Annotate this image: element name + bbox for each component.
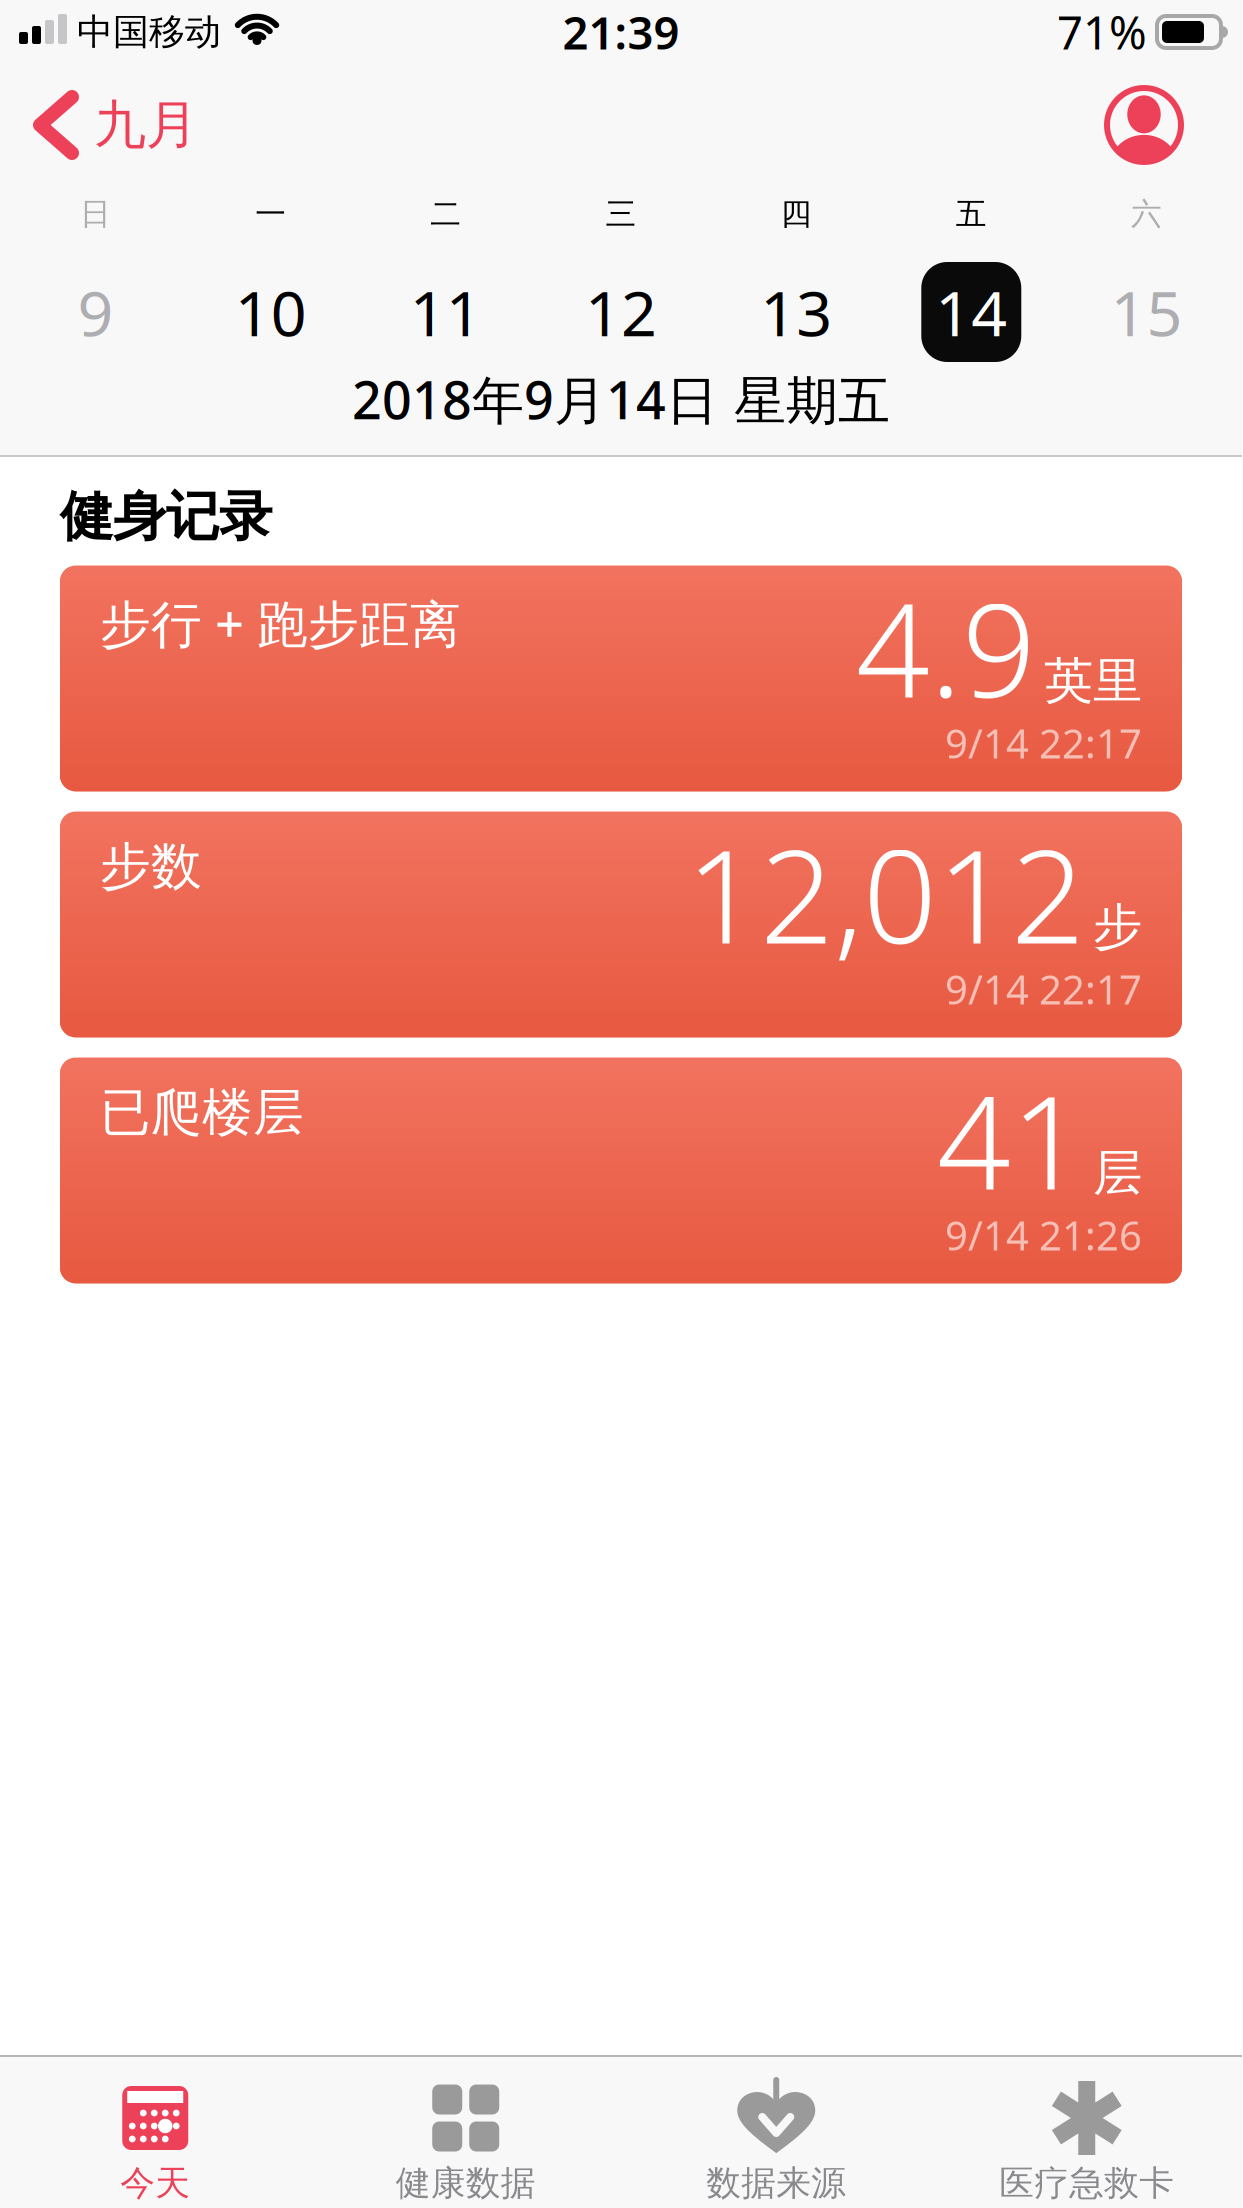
staticText: 13 bbox=[760, 270, 832, 354]
staticText: 九月 bbox=[94, 93, 198, 157]
staticText: 11 bbox=[410, 270, 482, 354]
button[interactable]: 数据来源 bbox=[621, 2057, 931, 2205]
staticText: 健康数据 bbox=[396, 2162, 536, 2205]
staticText: 健身记录 bbox=[60, 484, 272, 549]
staticText: 21:39 bbox=[562, 2, 679, 62]
staticText: 今天 bbox=[120, 2162, 190, 2205]
staticText: 9 bbox=[78, 270, 114, 354]
button[interactable]: 医疗急救卡 bbox=[931, 2057, 1242, 2205]
staticText: 9/14 22:17 bbox=[945, 962, 1142, 1015]
staticText: 英里 bbox=[1044, 651, 1142, 711]
staticText: 41 bbox=[937, 1053, 1085, 1225]
button[interactable]: 已爬楼层 bbox=[60, 1057, 1182, 1283]
button[interactable]: 9 bbox=[78, 270, 114, 354]
staticText: 中国移动 bbox=[77, 10, 221, 54]
staticText: 五 bbox=[956, 195, 987, 233]
button[interactable]: 步数 bbox=[60, 811, 1182, 1037]
button[interactable]: 13 bbox=[760, 270, 832, 354]
staticText: 步行 + 跑步距离 bbox=[100, 589, 461, 657]
staticText: 四 bbox=[781, 195, 812, 233]
staticText: 数据来源 bbox=[706, 2162, 846, 2205]
button[interactable]: 12 bbox=[585, 270, 657, 354]
staticText: 一 bbox=[255, 195, 286, 233]
button[interactable]: 10 bbox=[235, 270, 307, 354]
button[interactable]: 九月 bbox=[40, 93, 198, 157]
button[interactable]: 14 bbox=[921, 262, 1021, 362]
staticText: 步 bbox=[1093, 897, 1142, 957]
button[interactable]: 11 bbox=[410, 270, 482, 354]
button[interactable]: 15 bbox=[1110, 270, 1182, 354]
button[interactable]: 健康数据 bbox=[310, 2057, 621, 2205]
staticText: 14 bbox=[935, 270, 1007, 354]
staticText: 4.9 bbox=[856, 561, 1036, 733]
staticText: 2018年9月14日 星期五 bbox=[352, 364, 890, 434]
staticText: 层 bbox=[1093, 1143, 1142, 1203]
staticText: 12 bbox=[585, 270, 657, 354]
staticText: 12,012 bbox=[686, 807, 1085, 979]
staticText: 15 bbox=[1110, 270, 1182, 354]
staticText: 9/14 22:17 bbox=[945, 716, 1142, 769]
staticText: 已爬楼层 bbox=[100, 1081, 304, 1144]
staticText: 二 bbox=[430, 195, 461, 233]
staticText: 医疗急救卡 bbox=[999, 2162, 1174, 2205]
staticText: 日 bbox=[80, 195, 111, 233]
button[interactable]: 步行 + 跑步距离 bbox=[60, 565, 1182, 791]
button[interactable]: 今天 bbox=[0, 2057, 310, 2205]
staticText: 三 bbox=[605, 195, 636, 233]
staticText: 71% bbox=[1057, 2, 1147, 62]
staticText: 9/14 21:26 bbox=[945, 1208, 1142, 1261]
button[interactable] bbox=[1106, 87, 1182, 163]
staticText: 10 bbox=[235, 270, 307, 354]
staticText: 六 bbox=[1131, 195, 1162, 233]
staticText: 步数 bbox=[100, 835, 202, 898]
